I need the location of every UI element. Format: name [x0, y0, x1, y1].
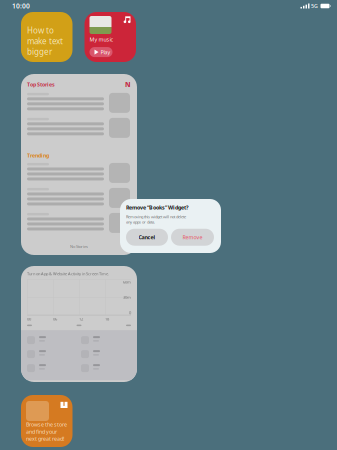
button[interactable]: Cancel [126, 229, 168, 246]
staticText: 30m [123, 295, 131, 300]
staticText: My music [89, 36, 113, 43]
staticText: How to make text bigger [27, 25, 63, 57]
staticText: Top Stories [27, 81, 55, 88]
staticText: 60m [123, 279, 131, 285]
staticText: Removing this widget will not delete any… [126, 214, 186, 225]
button[interactable]: How to make text bigger [21, 12, 72, 62]
button[interactable]: Remove [171, 229, 214, 246]
staticText: Play [100, 48, 110, 56]
staticText: Cancel [138, 234, 155, 241]
staticText: 0 [129, 310, 131, 315]
staticText: 5G [311, 2, 318, 10]
staticText: 00 [27, 316, 31, 322]
staticText: Remove “Books” Widget? [126, 204, 189, 211]
staticText: Remove [182, 234, 202, 241]
staticText: Trending [27, 152, 49, 159]
staticText: 10:00 [12, 2, 30, 10]
staticText: N [125, 80, 131, 89]
staticText: 12 [79, 316, 83, 322]
button[interactable]: Top Stories [21, 74, 137, 255]
button[interactable]: Turn on App & Website Activity in Screen… [21, 266, 137, 382]
button[interactable]: Browse the store and find your next grea… [21, 395, 72, 447]
staticText: Browse the store and find your next grea… [26, 421, 67, 442]
staticText: No Stories [70, 244, 88, 249]
button[interactable]: My music [84, 12, 136, 62]
staticText: Turn on App & Website Activity in Screen… [27, 271, 109, 276]
staticText: 18 [105, 316, 109, 322]
staticText: 06 [53, 316, 57, 322]
